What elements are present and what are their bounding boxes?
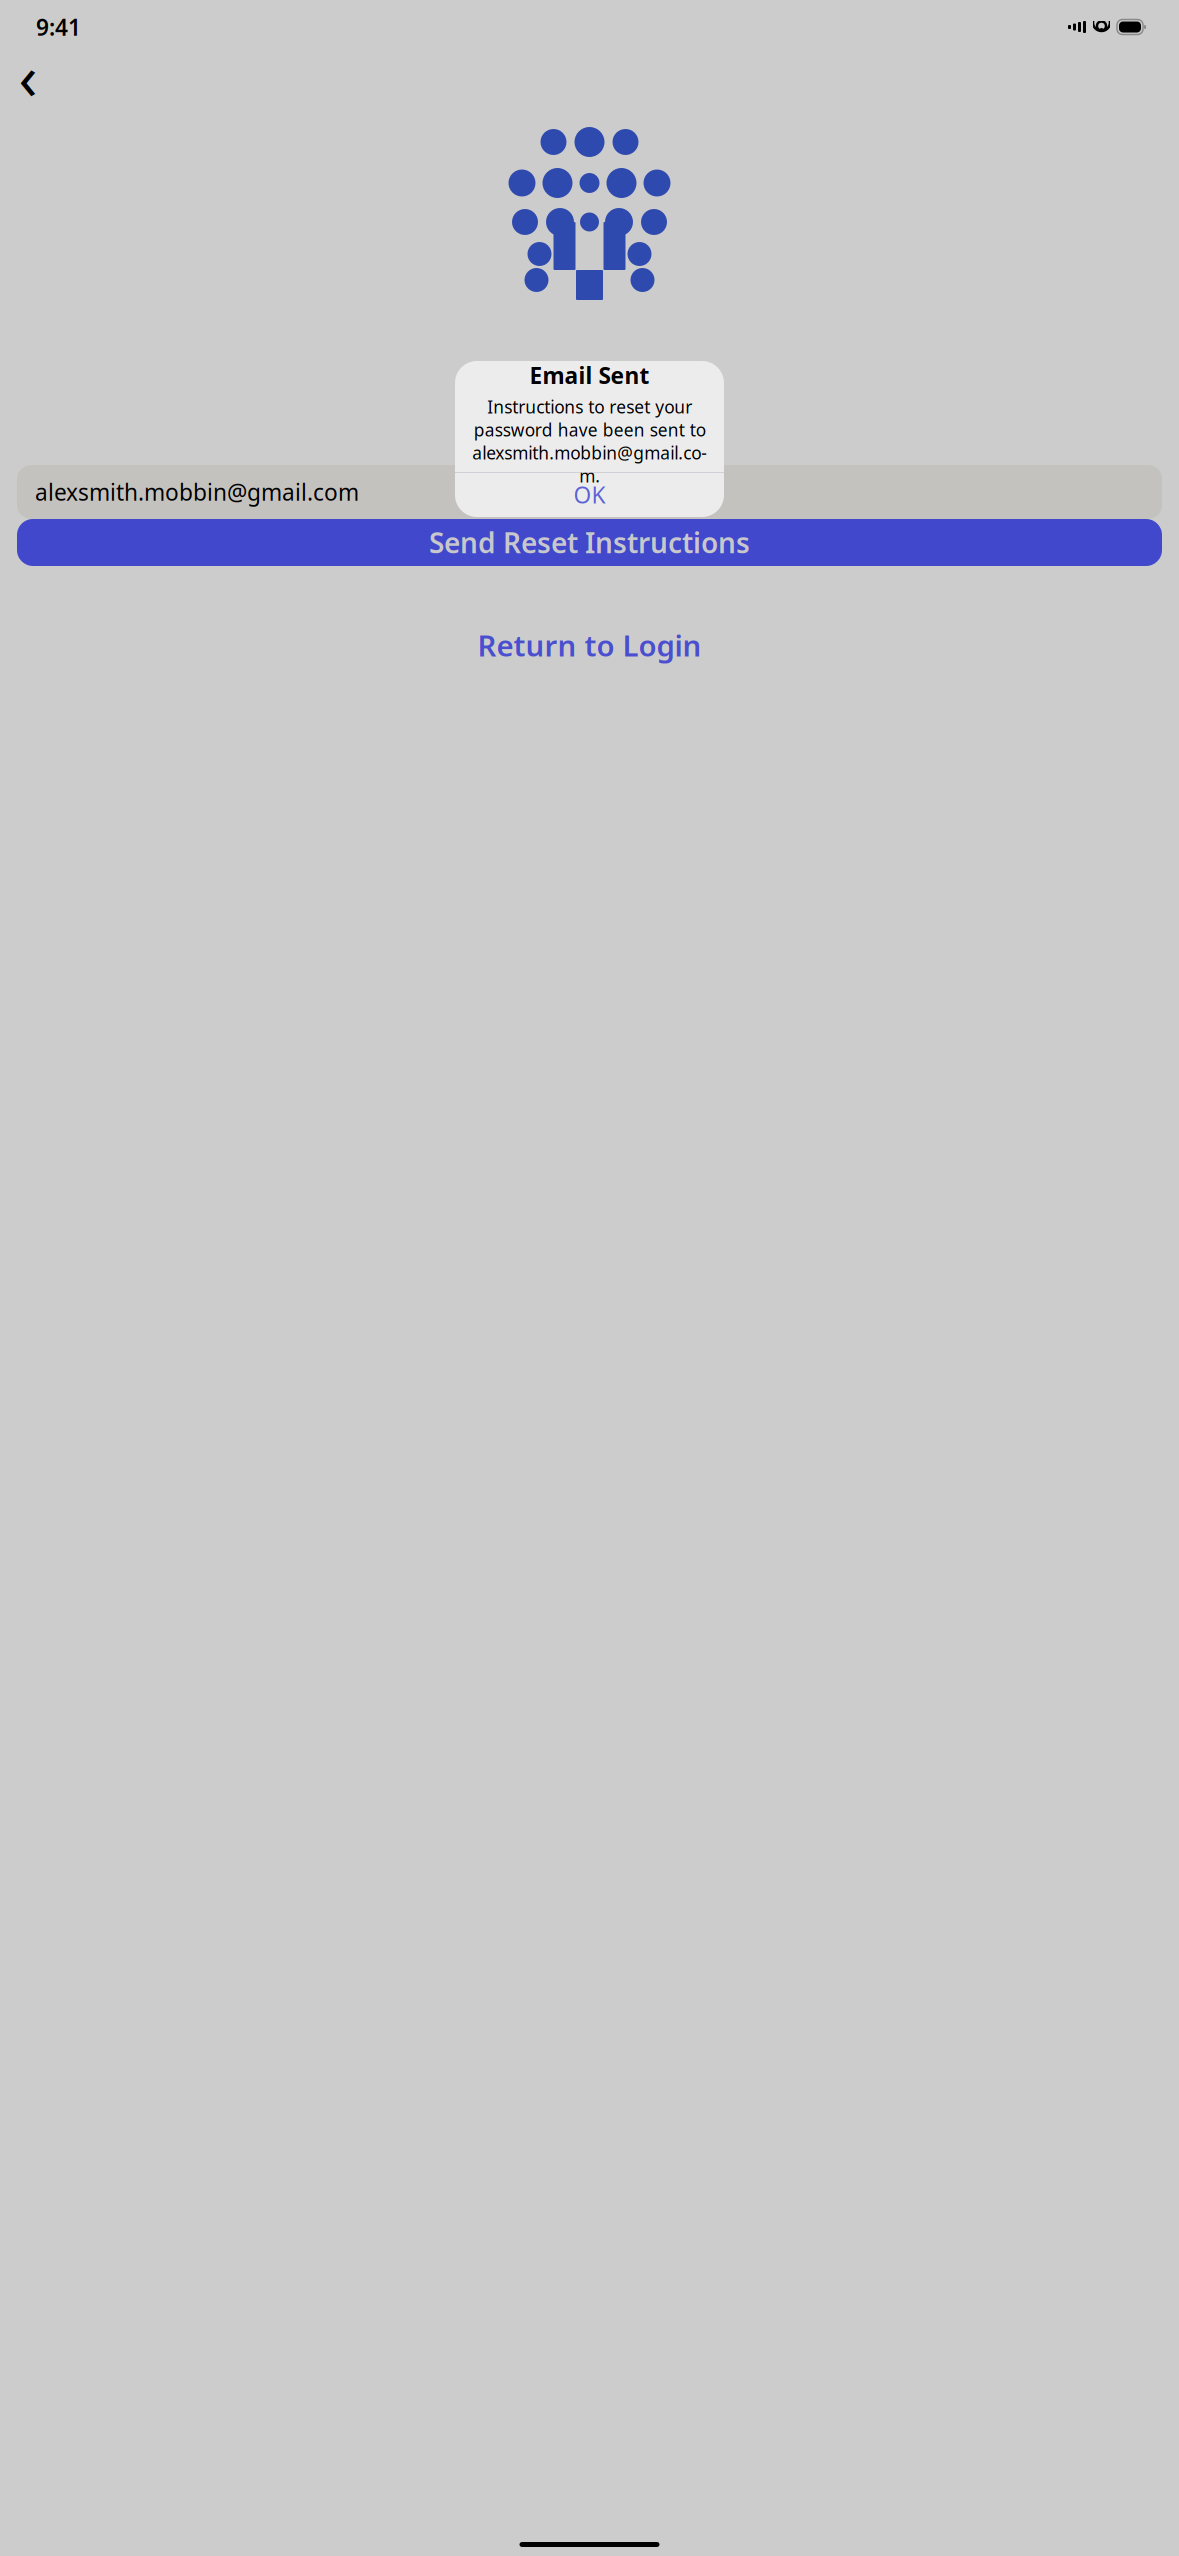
staticText: ‹ xyxy=(18,35,37,117)
staticText: Send Reset Instructions xyxy=(429,524,750,561)
staticText: Return to Login xyxy=(477,625,701,664)
staticText: alexsmith.mobbin@gmail.com xyxy=(35,477,359,507)
staticText: Instructions to reset your password have… xyxy=(472,395,707,487)
button[interactable]: Send Reset Instructions xyxy=(17,519,1162,566)
staticText: OK xyxy=(573,480,605,510)
button[interactable]: OK xyxy=(455,473,724,517)
staticText: Email Sent xyxy=(529,360,649,390)
staticText: 9:41 xyxy=(36,12,81,42)
button[interactable]: Back xyxy=(6,54,50,98)
button[interactable]: Return to Login xyxy=(17,628,1162,662)
